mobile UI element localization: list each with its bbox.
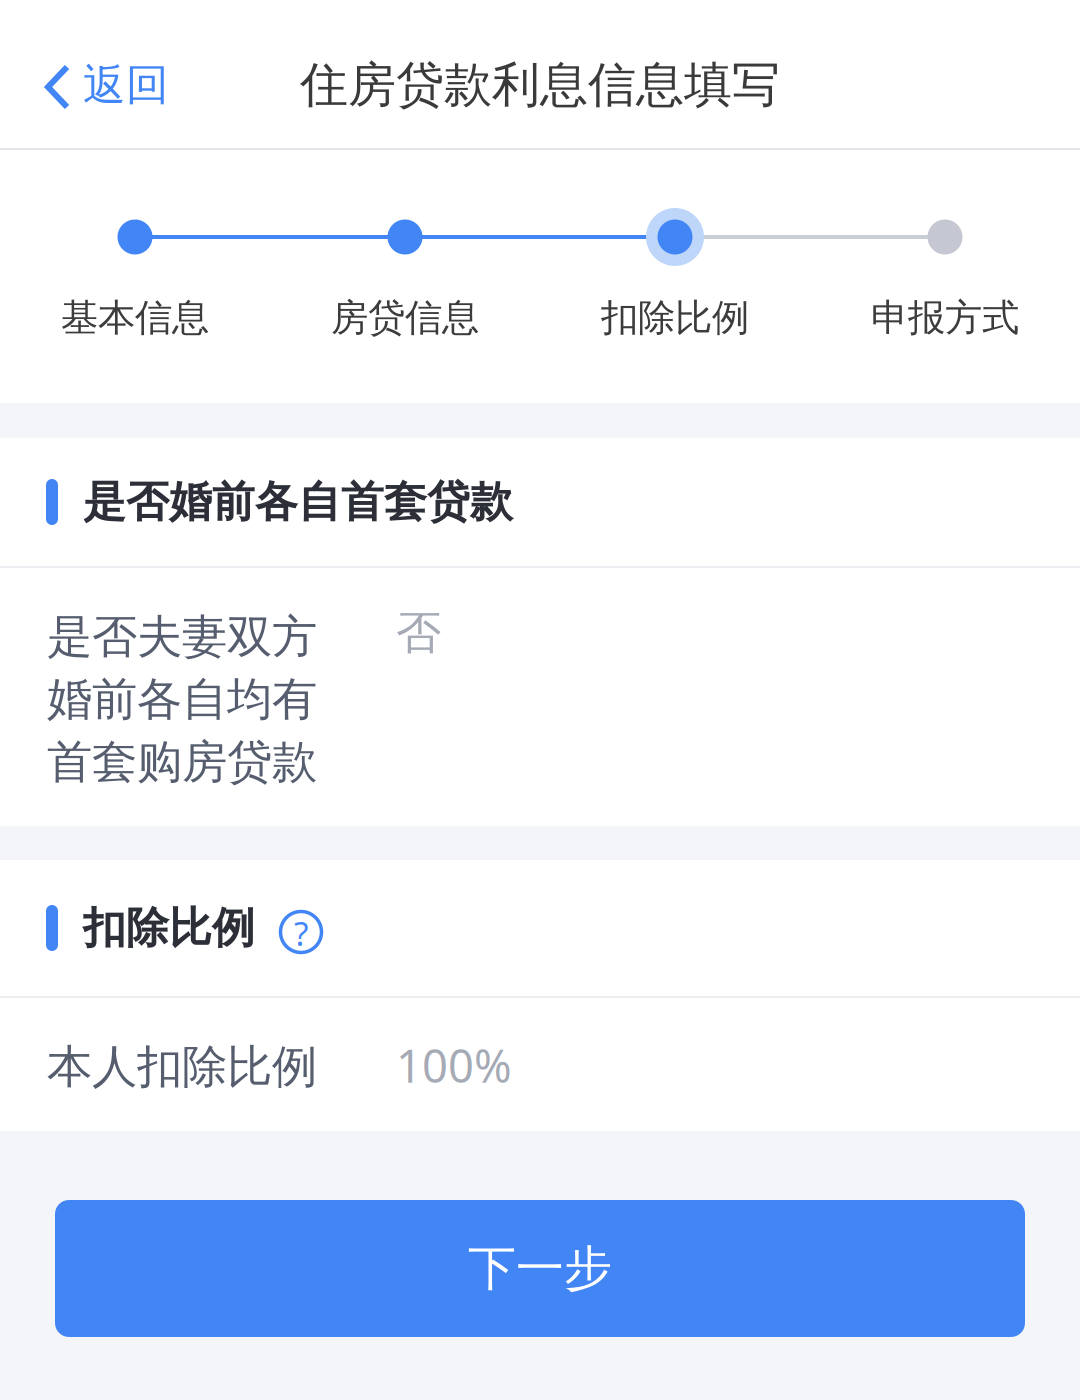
staticText: 否 (396, 605, 441, 661)
staticText: 扣除比例 (601, 295, 749, 341)
staticText: 100% (396, 1035, 512, 1095)
staticText: 下一步 (468, 1239, 612, 1298)
staticText: 基本信息 (61, 295, 209, 341)
staticText: 本人扣除比例 (47, 1039, 317, 1095)
button[interactable]: 下一步 (55, 1200, 1025, 1337)
button[interactable]: 扣除比例说明 (272, 899, 330, 957)
button[interactable]: 是否夫妻双方 (0, 568, 1080, 826)
staticText: 婚前各自均有 (47, 672, 317, 727)
staticText: 住房贷款利息信息填写 (300, 55, 780, 114)
staticText: 返回 (83, 59, 169, 111)
button[interactable]: 返回 (0, 0, 189, 148)
staticText: 是否夫妻双方 (47, 609, 317, 665)
staticText: 申报方式 (871, 295, 1019, 341)
staticText: 是否婚前各自首套贷款 (83, 476, 513, 528)
staticText: 首套购房贷款 (47, 734, 317, 790)
button[interactable]: 本人扣除比例 (0, 998, 1080, 1131)
staticText: ? (294, 911, 308, 955)
staticText: 房贷信息 (331, 295, 479, 341)
staticText: 扣除比例 (83, 902, 255, 954)
